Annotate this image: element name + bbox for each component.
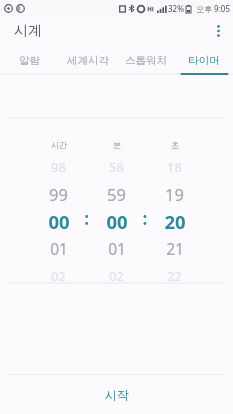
staticText: 59: [107, 183, 126, 205]
staticText: 알람: [19, 54, 40, 67]
staticText: 02: [109, 268, 124, 285]
staticText: 초: [171, 140, 179, 150]
staticText: 시간: [51, 140, 67, 150]
staticText: 02: [51, 268, 66, 285]
staticText: 58: [109, 158, 124, 176]
staticText: 시계: [14, 22, 42, 40]
button[interactable]: Set 분: [0, 150, 233, 330]
button[interactable]: 스톱워치: [117, 46, 175, 74]
staticText: 19: [165, 183, 184, 205]
button[interactable]: 시작: [0, 375, 233, 414]
staticText: 22: [167, 268, 182, 285]
staticText: 분: [113, 140, 121, 150]
staticText: 18: [167, 158, 182, 176]
staticText: 세계시각: [67, 54, 109, 67]
staticText: 20: [164, 209, 186, 231]
button[interactable]: Set 초: [0, 150, 233, 330]
staticText: 스톱워치: [125, 54, 167, 67]
staticText: 98: [51, 158, 66, 176]
button[interactable]: Set 시간: [0, 150, 233, 330]
staticText: 99: [49, 183, 68, 205]
button[interactable]: 세계시각: [59, 46, 117, 74]
staticText: 타이머: [188, 54, 220, 67]
staticText: 01: [108, 238, 126, 259]
staticText: 오후 9:05: [196, 3, 230, 14]
staticText: 32%: [168, 3, 184, 14]
button[interactable]: 알람: [0, 46, 59, 74]
button[interactable]: More options: [203, 16, 233, 46]
button[interactable]: 타이머: [175, 46, 233, 74]
staticText: 21: [166, 238, 184, 259]
staticText: 시작: [105, 387, 129, 402]
staticText: 00: [48, 209, 70, 231]
staticText: 01: [50, 238, 68, 259]
staticText: 00: [106, 209, 128, 231]
